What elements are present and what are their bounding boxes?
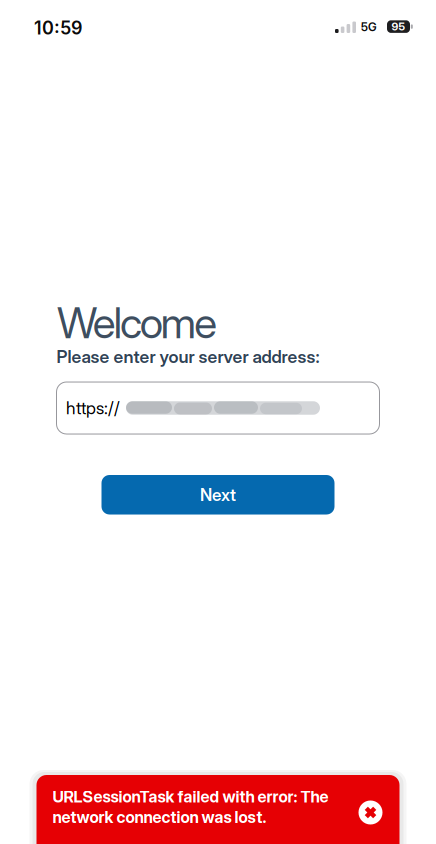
button[interactable]: Dismiss bbox=[358, 800, 382, 824]
button[interactable]: Server address bbox=[56, 381, 380, 434]
staticText: network connection was lost. bbox=[52, 807, 266, 827]
staticText: Please enter your server address: bbox=[56, 346, 319, 367]
staticText: URLSessionTask failed with error: The bbox=[52, 787, 328, 806]
staticText: Welcome bbox=[57, 297, 217, 348]
staticText: 5G bbox=[361, 20, 377, 34]
staticText: https:// bbox=[66, 397, 120, 419]
staticText: 10:59 bbox=[34, 17, 83, 39]
staticText: 95 bbox=[391, 20, 405, 33]
staticText: Next bbox=[200, 484, 236, 505]
button[interactable]: Next bbox=[101, 475, 334, 514]
